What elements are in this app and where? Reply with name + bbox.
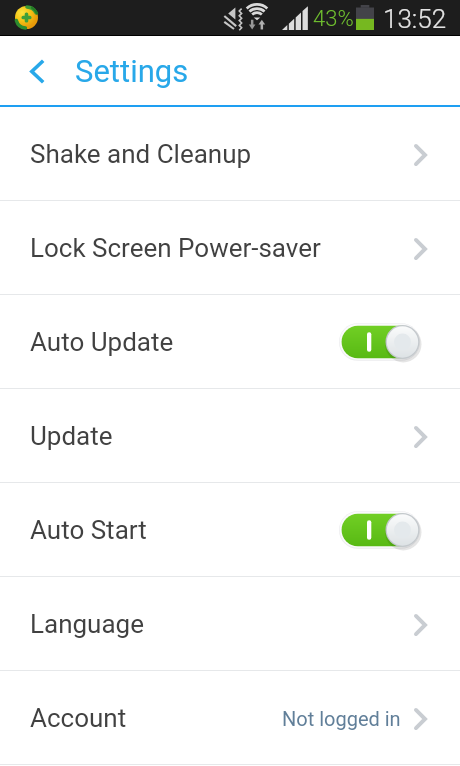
button[interactable]: Back [12,36,62,107]
staticText: 13:52 [383,4,447,34]
staticText: Account [30,703,127,733]
staticText: Update [30,421,113,451]
button[interactable]: Auto Update [0,295,460,388]
button[interactable]: Auto Start, on [339,510,421,550]
button[interactable]: Lock Screen Power-saver [0,201,460,294]
staticText: Auto Update [30,327,174,357]
staticText: Not logged in [282,707,401,730]
staticText: 43% [313,6,354,32]
button[interactable]: Auto Start [0,483,460,576]
staticText: Settings [75,53,189,89]
button[interactable]: Account [0,671,460,764]
staticText: Lock Screen Power-saver [30,233,321,263]
button[interactable]: Shake and Cleanup [0,107,460,200]
staticText: Auto Start [30,515,147,545]
button[interactable]: Update [0,389,460,482]
staticText: Language [30,609,144,639]
staticText: Shake and Cleanup [30,139,252,169]
button[interactable]: Language [0,577,460,670]
button[interactable]: Auto Update, on [339,322,421,362]
